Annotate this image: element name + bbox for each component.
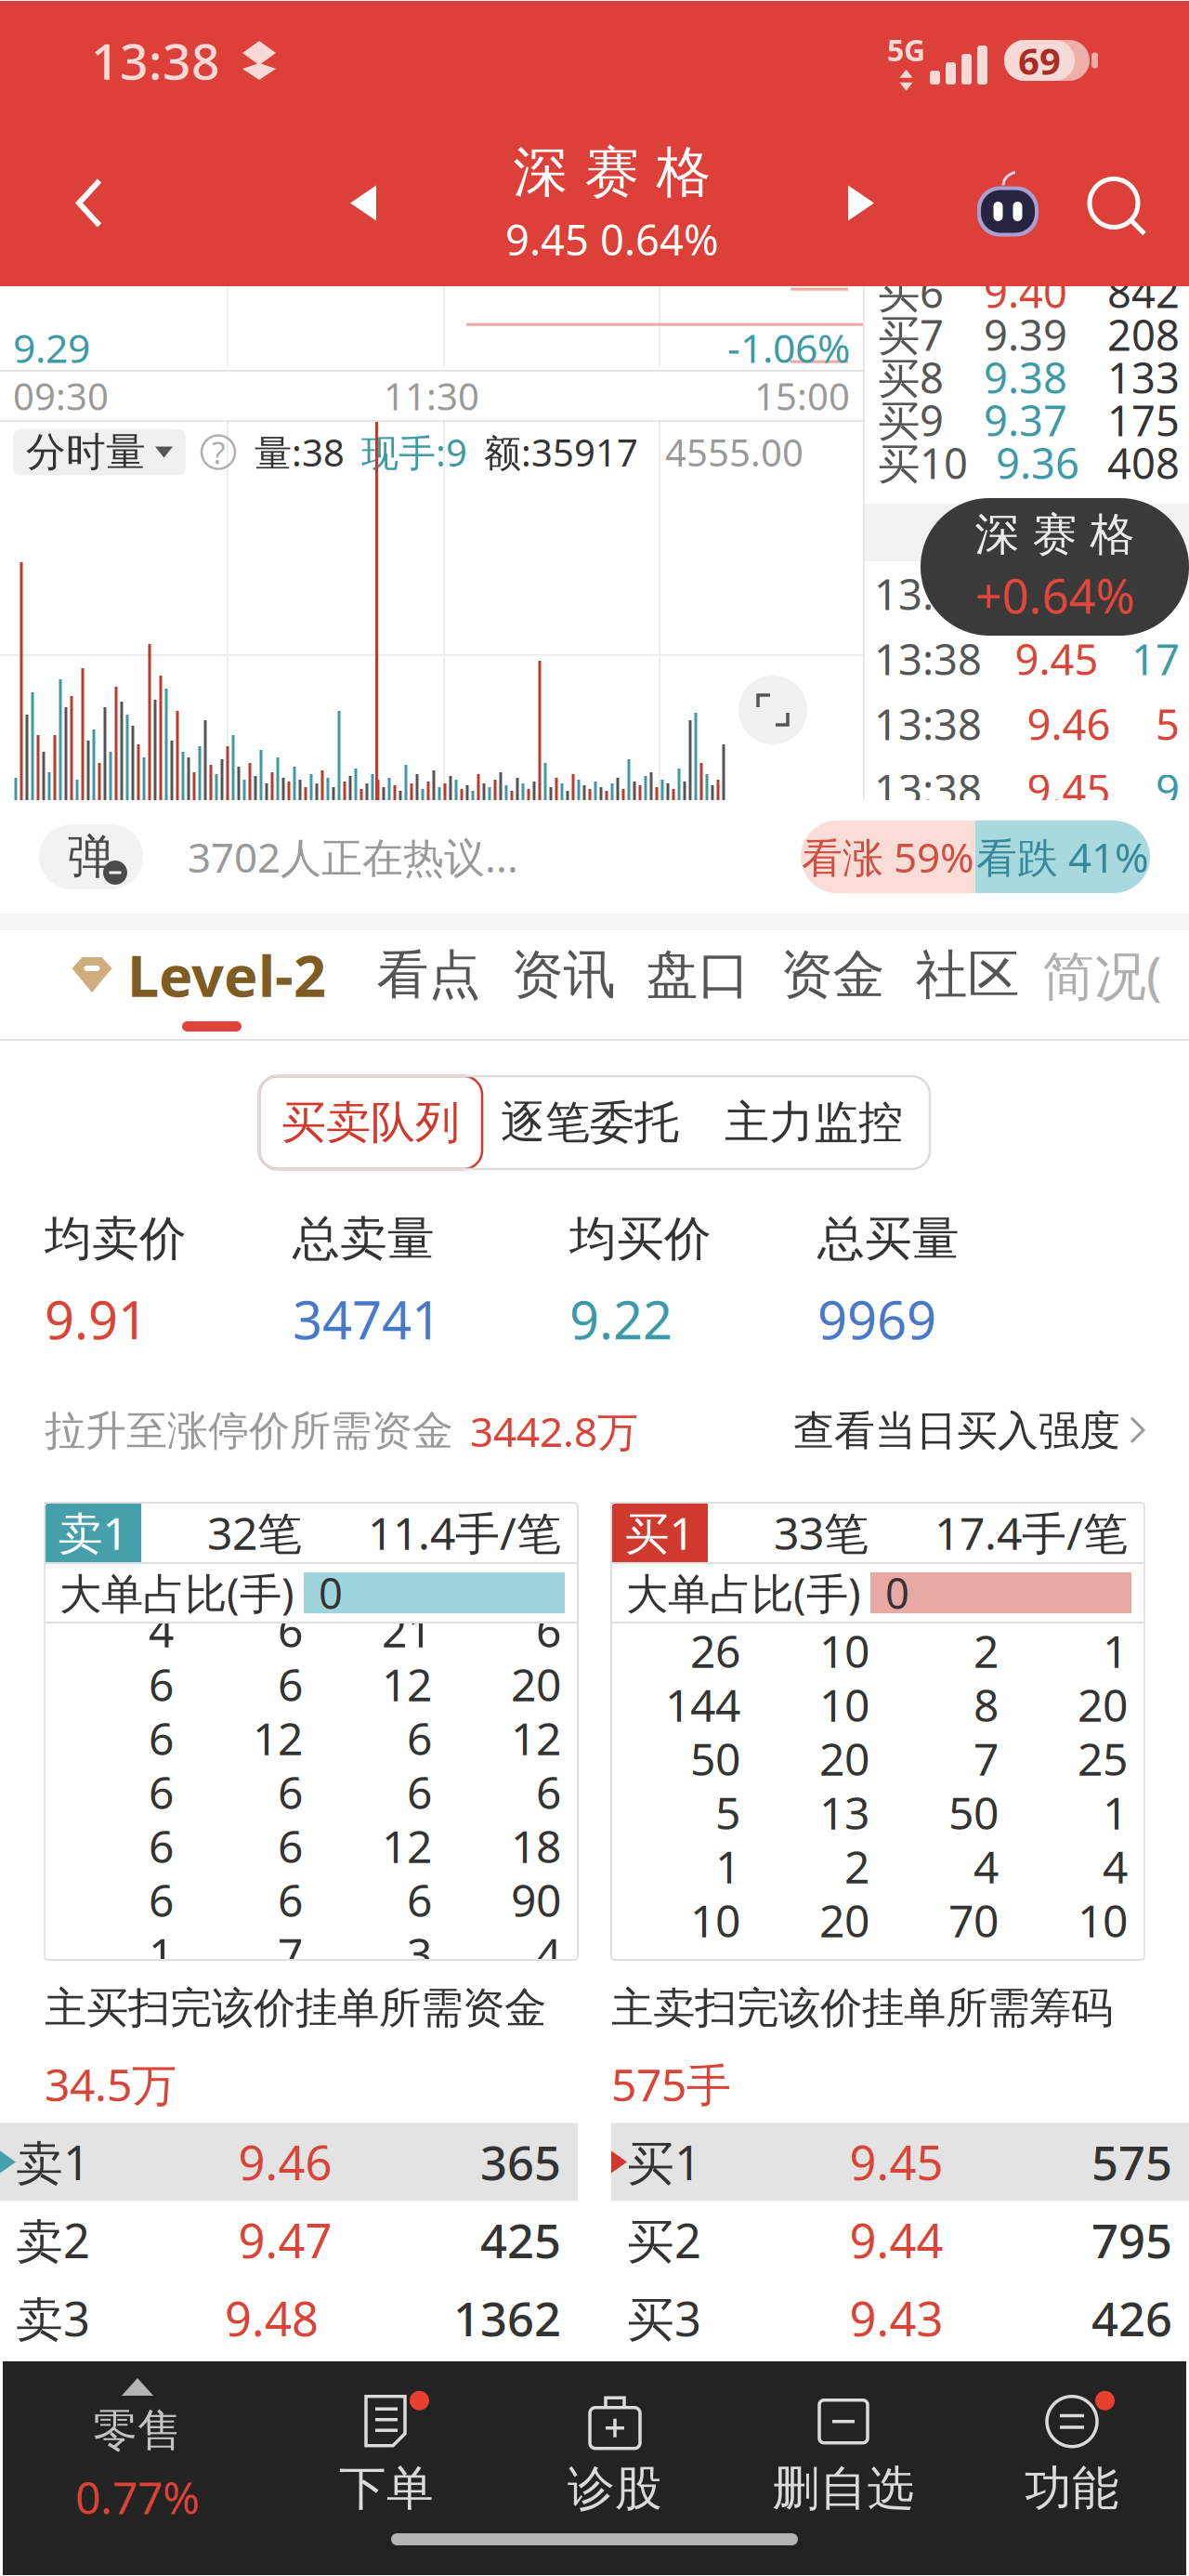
button[interactable]: Fullscreen chart xyxy=(738,676,807,744)
staticText: 70 xyxy=(948,1890,999,1950)
staticText: 32笔 xyxy=(207,1503,302,1562)
staticText: 20 xyxy=(819,1729,869,1788)
button[interactable]: 看涨 59% xyxy=(801,821,975,893)
staticText: 575 xyxy=(1091,2131,1172,2193)
staticText: 删自选 xyxy=(772,2460,915,2517)
staticText: 分时量 xyxy=(26,428,146,477)
button[interactable]: 主力监控 xyxy=(698,1076,930,1169)
button[interactable]: 买卖队列 xyxy=(259,1076,482,1169)
staticText: 175 xyxy=(1107,392,1180,448)
staticText: 9.38 xyxy=(984,349,1067,405)
staticText: 6 xyxy=(536,1600,561,1660)
staticText: 15:00 xyxy=(754,371,850,421)
staticText: 主力监控 xyxy=(725,1095,903,1150)
staticText: 9.46 xyxy=(238,2131,332,2193)
button[interactable]: 买2 xyxy=(611,2201,1189,2279)
staticText: 9.91 xyxy=(45,1284,148,1354)
button[interactable]: Level-2 xyxy=(72,937,361,1013)
staticText: 426 xyxy=(1091,2287,1172,2349)
staticText: 诊股 xyxy=(568,2460,662,2517)
staticText: 1 xyxy=(715,1836,740,1896)
button[interactable]: 功能 xyxy=(958,2387,1186,2517)
button[interactable]: 资金 xyxy=(765,943,900,1007)
staticText: 9.44 xyxy=(849,2209,943,2271)
staticText: 13 xyxy=(819,1783,869,1842)
staticText: 3702人正在热议... xyxy=(188,830,518,884)
staticText: 弹 xyxy=(67,828,115,886)
button[interactable]: 3702人正在热议... xyxy=(188,830,518,884)
staticText: 买1 xyxy=(625,1503,694,1562)
button[interactable]: AI assistant xyxy=(957,143,1059,263)
staticText: 看点 xyxy=(377,943,481,1007)
button[interactable]: 盘口 xyxy=(631,943,765,1007)
button[interactable]: 逐笔委托 xyxy=(482,1076,698,1169)
staticText: 深 赛 格 xyxy=(513,139,711,206)
staticText: 买9 xyxy=(878,392,944,448)
staticText: 大单占比(手) xyxy=(59,1565,294,1621)
button[interactable]: 卖1 xyxy=(0,2123,578,2201)
button[interactable]: 买1 xyxy=(611,2123,1189,2201)
staticText: 卖3 xyxy=(16,2287,90,2349)
staticText: Level-2 xyxy=(127,937,326,1013)
staticText: 盘口 xyxy=(646,943,750,1007)
staticText: 6 xyxy=(278,1762,303,1821)
staticText: 0 xyxy=(885,1565,909,1621)
staticText: 逐笔委托 xyxy=(501,1095,679,1150)
staticText: 10 xyxy=(819,1621,869,1680)
button[interactable]: Previous stock xyxy=(323,143,403,263)
button[interactable]: 卖3 xyxy=(0,2279,578,2357)
staticText: 6 xyxy=(278,1600,303,1660)
staticText: 零售 xyxy=(93,2403,182,2458)
button[interactable]: 卖2 xyxy=(0,2201,578,2279)
button[interactable]: Search xyxy=(1063,143,1165,263)
staticText: 深 赛 格 xyxy=(975,507,1135,562)
staticText: 9969 xyxy=(817,1284,936,1354)
staticText: -1.06% xyxy=(727,321,850,374)
button[interactable]: 零售 xyxy=(3,2378,272,2526)
staticText: 9.39 xyxy=(984,306,1067,362)
button[interactable]: 看点 xyxy=(361,943,496,1007)
button[interactable]: 删自选 xyxy=(729,2387,958,2517)
button[interactable]: Chat xyxy=(39,824,143,889)
staticText: 看涨 59% xyxy=(802,830,974,884)
button[interactable]: Back xyxy=(33,143,145,263)
staticText: 20 xyxy=(819,1890,869,1950)
button[interactable]: 查看当日买入强度 xyxy=(793,1406,1144,1456)
staticText: 看跌 41% xyxy=(976,830,1149,884)
staticText: 6 xyxy=(149,1708,174,1767)
button[interactable]: 资讯 xyxy=(496,943,631,1007)
staticText: 3 xyxy=(407,1924,432,1983)
staticText: 10 xyxy=(690,1890,740,1950)
button[interactable]: 简况( xyxy=(1035,940,1169,1009)
staticText: 13:38 xyxy=(874,761,982,817)
staticText: 10 xyxy=(1078,1890,1128,1950)
staticText: 20 xyxy=(1078,1675,1128,1734)
staticText: 9.46 xyxy=(1027,696,1111,752)
staticText: 9.47 xyxy=(238,2209,332,2271)
staticText: 拉升至涨停价所需资金 xyxy=(45,1406,453,1456)
button[interactable]: 诊股 xyxy=(501,2387,729,2517)
staticText: 12 xyxy=(382,1654,432,1714)
staticText: 6 xyxy=(407,1870,432,1929)
staticText: 9.43 xyxy=(849,2287,943,2349)
staticText: 6 xyxy=(407,1762,432,1821)
button[interactable]: 分时量 xyxy=(13,429,186,475)
staticText: 17.4手/笔 xyxy=(934,1503,1128,1562)
staticText: 卖1 xyxy=(58,1503,128,1562)
staticText: 9.40 xyxy=(984,264,1067,320)
staticText: 资金 xyxy=(781,943,885,1007)
staticText: 11:30 xyxy=(384,371,479,421)
button[interactable]: 买3 xyxy=(611,2279,1189,2357)
button[interactable]: Help xyxy=(201,435,236,470)
staticText: 18 xyxy=(511,1816,561,1875)
staticText: 21 xyxy=(382,1600,432,1660)
button[interactable]: Next stock xyxy=(821,143,901,263)
button[interactable]: 看跌 41% xyxy=(975,821,1150,893)
button[interactable]: 下单 xyxy=(272,2387,501,2517)
staticText: 13:38 xyxy=(874,696,982,752)
staticText: 9 xyxy=(1156,761,1180,817)
staticText: 查看当日买入强度 xyxy=(793,1406,1120,1456)
staticText: 9.29 xyxy=(13,321,90,374)
staticText: 买7 xyxy=(878,306,944,362)
button[interactable]: 社区 xyxy=(900,943,1035,1007)
